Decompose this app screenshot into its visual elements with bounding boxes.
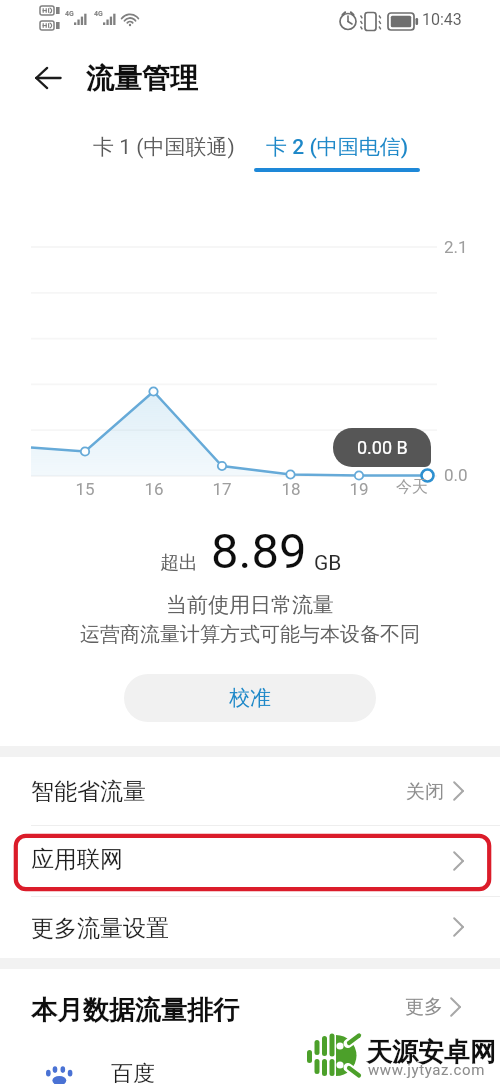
staticText: 当前使用日常流量	[0, 592, 500, 618]
staticText: 更多	[405, 995, 443, 1019]
button[interactable]: 更多流量设置	[0, 896, 500, 958]
staticText: 0.00 B	[357, 437, 408, 458]
staticText: 今天	[387, 477, 437, 497]
staticText: 流量管理	[86, 61, 198, 96]
button[interactable]: 卡 2 (中国电信)	[229, 129, 445, 179]
button[interactable]: 百度	[0, 1038, 500, 1084]
staticText: 19	[334, 479, 384, 499]
button[interactable]: Back	[28, 58, 68, 98]
staticText: 4G	[65, 10, 74, 18]
staticText: 更多流量设置	[31, 914, 169, 943]
staticText: 智能省流量	[31, 777, 146, 806]
staticText: 超出	[160, 551, 198, 575]
button[interactable]: 校准	[124, 674, 376, 722]
staticText: 卡 1 (中国联通)	[93, 134, 235, 160]
staticText: 16	[129, 479, 179, 499]
button[interactable]: 应用联网	[0, 828, 500, 894]
staticText: 0.0	[444, 465, 468, 485]
staticText: 校准	[229, 685, 271, 711]
staticText: 天源安卓网	[366, 1036, 496, 1069]
staticText: 8.89	[211, 523, 307, 580]
staticText: GB	[314, 551, 342, 576]
staticText: 10:43	[422, 10, 462, 29]
staticText: 18	[266, 479, 316, 499]
staticText: 本月数据流量排行	[31, 994, 239, 1027]
button[interactable]: 智能省流量	[0, 757, 500, 825]
button[interactable]: 卡 1 (中国联通)	[56, 129, 272, 173]
staticText: 应用联网	[31, 845, 123, 874]
staticText: 运营商流量计算方式可能与本设备不同	[0, 622, 500, 647]
staticText: 百度	[111, 1060, 155, 1084]
button[interactable]: 更多	[405, 992, 467, 1022]
staticText: 4G	[94, 10, 103, 18]
staticText: www.jytyaz.com	[368, 1061, 485, 1079]
staticText: 15	[60, 479, 110, 499]
staticText: 关闭	[406, 780, 444, 804]
staticText: 2.1	[444, 237, 468, 257]
staticText: 17	[197, 479, 247, 499]
staticText: 卡 2 (中国电信)	[266, 134, 409, 160]
